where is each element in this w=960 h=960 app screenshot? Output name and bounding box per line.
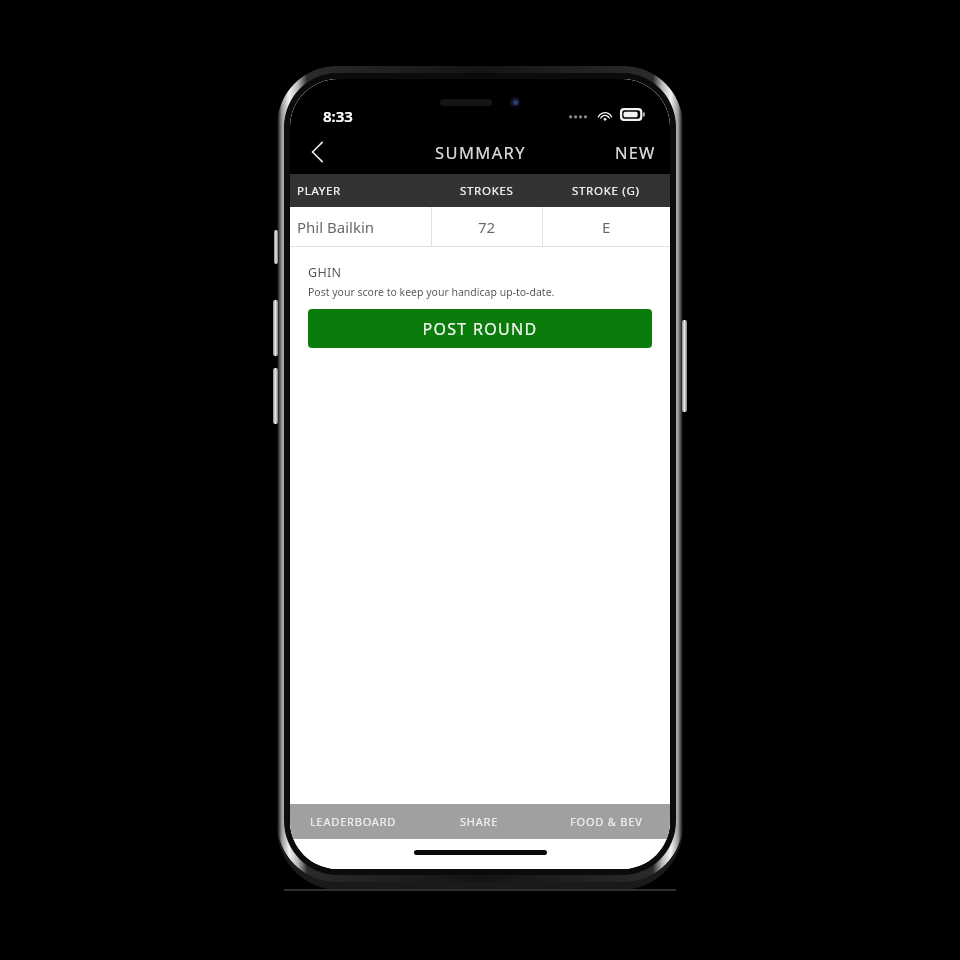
button[interactable]: FOOD & BEV: [543, 804, 670, 839]
staticText: POST ROUND: [422, 318, 538, 340]
staticText: 8:33: [323, 106, 353, 126]
button[interactable]: Phil Bailkin: [290, 207, 670, 246]
staticText: NEW: [615, 141, 656, 163]
staticText: E: [602, 217, 611, 237]
button[interactable]: POST ROUND: [308, 309, 652, 348]
button[interactable]: NEW: [601, 131, 670, 173]
button[interactable]: LEADERBOARD: [290, 804, 416, 839]
staticText: LEADERBOARD: [310, 814, 397, 829]
button[interactable]: Back: [294, 130, 340, 174]
staticText: GHIN: [308, 264, 342, 281]
staticText: SHARE: [460, 814, 499, 829]
staticText: SUMMARY: [435, 141, 526, 163]
staticText: STROKE (G): [572, 183, 640, 199]
staticText: Post your score to keep your handicap up…: [308, 285, 555, 299]
staticText: FOOD & BEV: [570, 814, 643, 829]
staticText: STROKES: [460, 183, 514, 199]
staticText: Phil Bailkin: [297, 217, 375, 237]
button[interactable]: SHARE: [416, 804, 543, 839]
staticText: PLAYER: [297, 183, 341, 199]
staticText: 72: [478, 217, 496, 237]
